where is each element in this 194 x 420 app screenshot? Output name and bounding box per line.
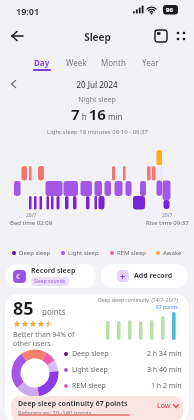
staticText: Add record xyxy=(134,271,173,281)
staticText: Rise time 09:37 xyxy=(146,219,189,227)
staticText: Record sleep xyxy=(31,266,76,276)
staticText: Deep sleep xyxy=(72,349,109,359)
staticText: 67 points xyxy=(156,304,178,311)
staticText: Year xyxy=(142,57,159,68)
staticText: Week xyxy=(66,57,87,68)
staticText: Light sleep 18 minutes 09:19 - 09:37 xyxy=(47,128,148,136)
staticText: 19:01 xyxy=(16,5,40,17)
staticText: Sleep sounds xyxy=(34,278,66,285)
staticText: Deep sleep continuity (14/7–20/7) xyxy=(98,297,178,304)
staticText: 1 h 2 min xyxy=(151,381,182,391)
staticText: Day xyxy=(34,57,50,68)
staticText: REM sleep xyxy=(117,249,146,257)
staticText: Low xyxy=(157,401,171,411)
staticText: 85 xyxy=(13,296,34,321)
staticText: REM sleep xyxy=(72,381,106,391)
staticText: 20/7 xyxy=(26,212,37,219)
staticText: 20 Jul 2024 xyxy=(76,79,118,90)
staticText: other users xyxy=(13,339,51,349)
staticText: Awake xyxy=(163,249,182,257)
staticText: points xyxy=(42,306,66,317)
staticText: 20/7 xyxy=(162,212,173,219)
staticText: Night sleep xyxy=(78,95,116,105)
staticText: 7 h 16 min xyxy=(71,104,123,124)
staticText: 2 h 34 min xyxy=(147,349,182,359)
staticText: Better than 94% of xyxy=(13,330,75,340)
staticText: Month xyxy=(101,57,126,68)
staticText: + xyxy=(120,270,126,282)
staticText: References: 20–140 points xyxy=(18,409,92,417)
staticText: Deep sleep xyxy=(19,249,51,257)
staticText: 3 h 40 min xyxy=(147,365,182,375)
staticText: 96 xyxy=(166,6,173,14)
staticText: Light sleep xyxy=(68,249,99,257)
staticText: Bed time 02:09 xyxy=(10,219,53,227)
staticText: Sleep xyxy=(84,30,111,44)
staticText: Deep sleep continuity 67 points xyxy=(18,399,128,409)
staticText: Light sleep xyxy=(72,365,108,375)
staticText: ☾ xyxy=(16,273,23,281)
